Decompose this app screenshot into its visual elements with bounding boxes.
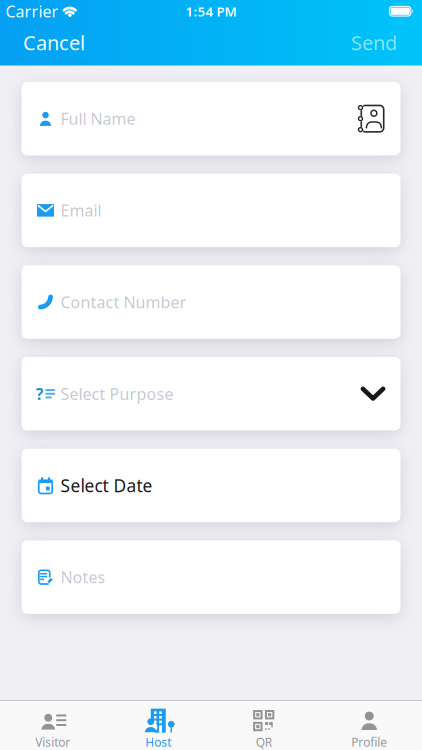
staticText: Full Name: [60, 108, 135, 129]
staticText: Profile: [351, 734, 387, 750]
staticText: Email: [60, 200, 101, 221]
button[interactable]: Full Name: [21, 82, 400, 155]
button[interactable]: Notes: [21, 540, 400, 614]
button[interactable]: Email: [21, 174, 400, 247]
button[interactable]: ?: [21, 357, 400, 430]
staticText: Contact Number: [60, 291, 186, 313]
button[interactable]: Host: [105, 701, 211, 750]
staticText: 1:54 PM: [185, 2, 236, 20]
button[interactable]: Visitor: [0, 701, 105, 750]
staticText: Select Date: [60, 474, 152, 497]
button[interactable]: Send: [351, 29, 397, 56]
staticText: Send: [351, 29, 397, 56]
staticText: Notes: [60, 566, 105, 588]
button[interactable]: Cancel: [23, 29, 85, 56]
staticText: Select Purpose: [60, 383, 173, 404]
button[interactable]: Profile: [316, 701, 422, 750]
button[interactable]: QR: [211, 701, 316, 750]
staticText: Cancel: [23, 29, 85, 56]
staticText: Host: [145, 734, 171, 750]
staticText: QR: [256, 734, 272, 750]
button[interactable]: Contact Number: [21, 265, 400, 339]
staticText: Visitor: [35, 734, 70, 750]
button[interactable]: Select Date: [21, 449, 400, 522]
staticText: ?: [36, 383, 44, 404]
staticText: Carrier: [5, 1, 58, 22]
button[interactable]: [355, 104, 385, 134]
